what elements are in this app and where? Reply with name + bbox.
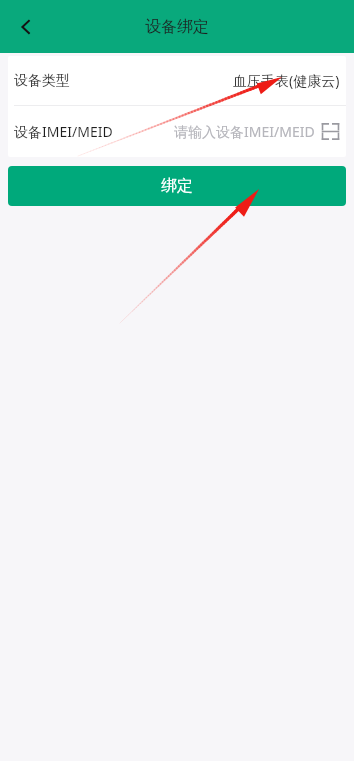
staticText: 设备类型 xyxy=(14,72,70,90)
button[interactable]: 设备类型 xyxy=(8,56,346,105)
staticText: 设备IMEI/MEID xyxy=(14,122,113,141)
staticText: 设备绑定 xyxy=(145,17,209,37)
staticText: 血压手表(健康云) xyxy=(233,71,340,90)
button[interactable]: Back xyxy=(6,7,46,47)
button[interactable]: 设备IMEI/MEID xyxy=(8,106,346,157)
staticText: 绑定 xyxy=(161,176,193,196)
button[interactable]: 绑定 xyxy=(8,166,346,206)
staticText: 请输入设备IMEI/MEID xyxy=(174,122,315,141)
button[interactable]: Scan code xyxy=(321,122,340,141)
